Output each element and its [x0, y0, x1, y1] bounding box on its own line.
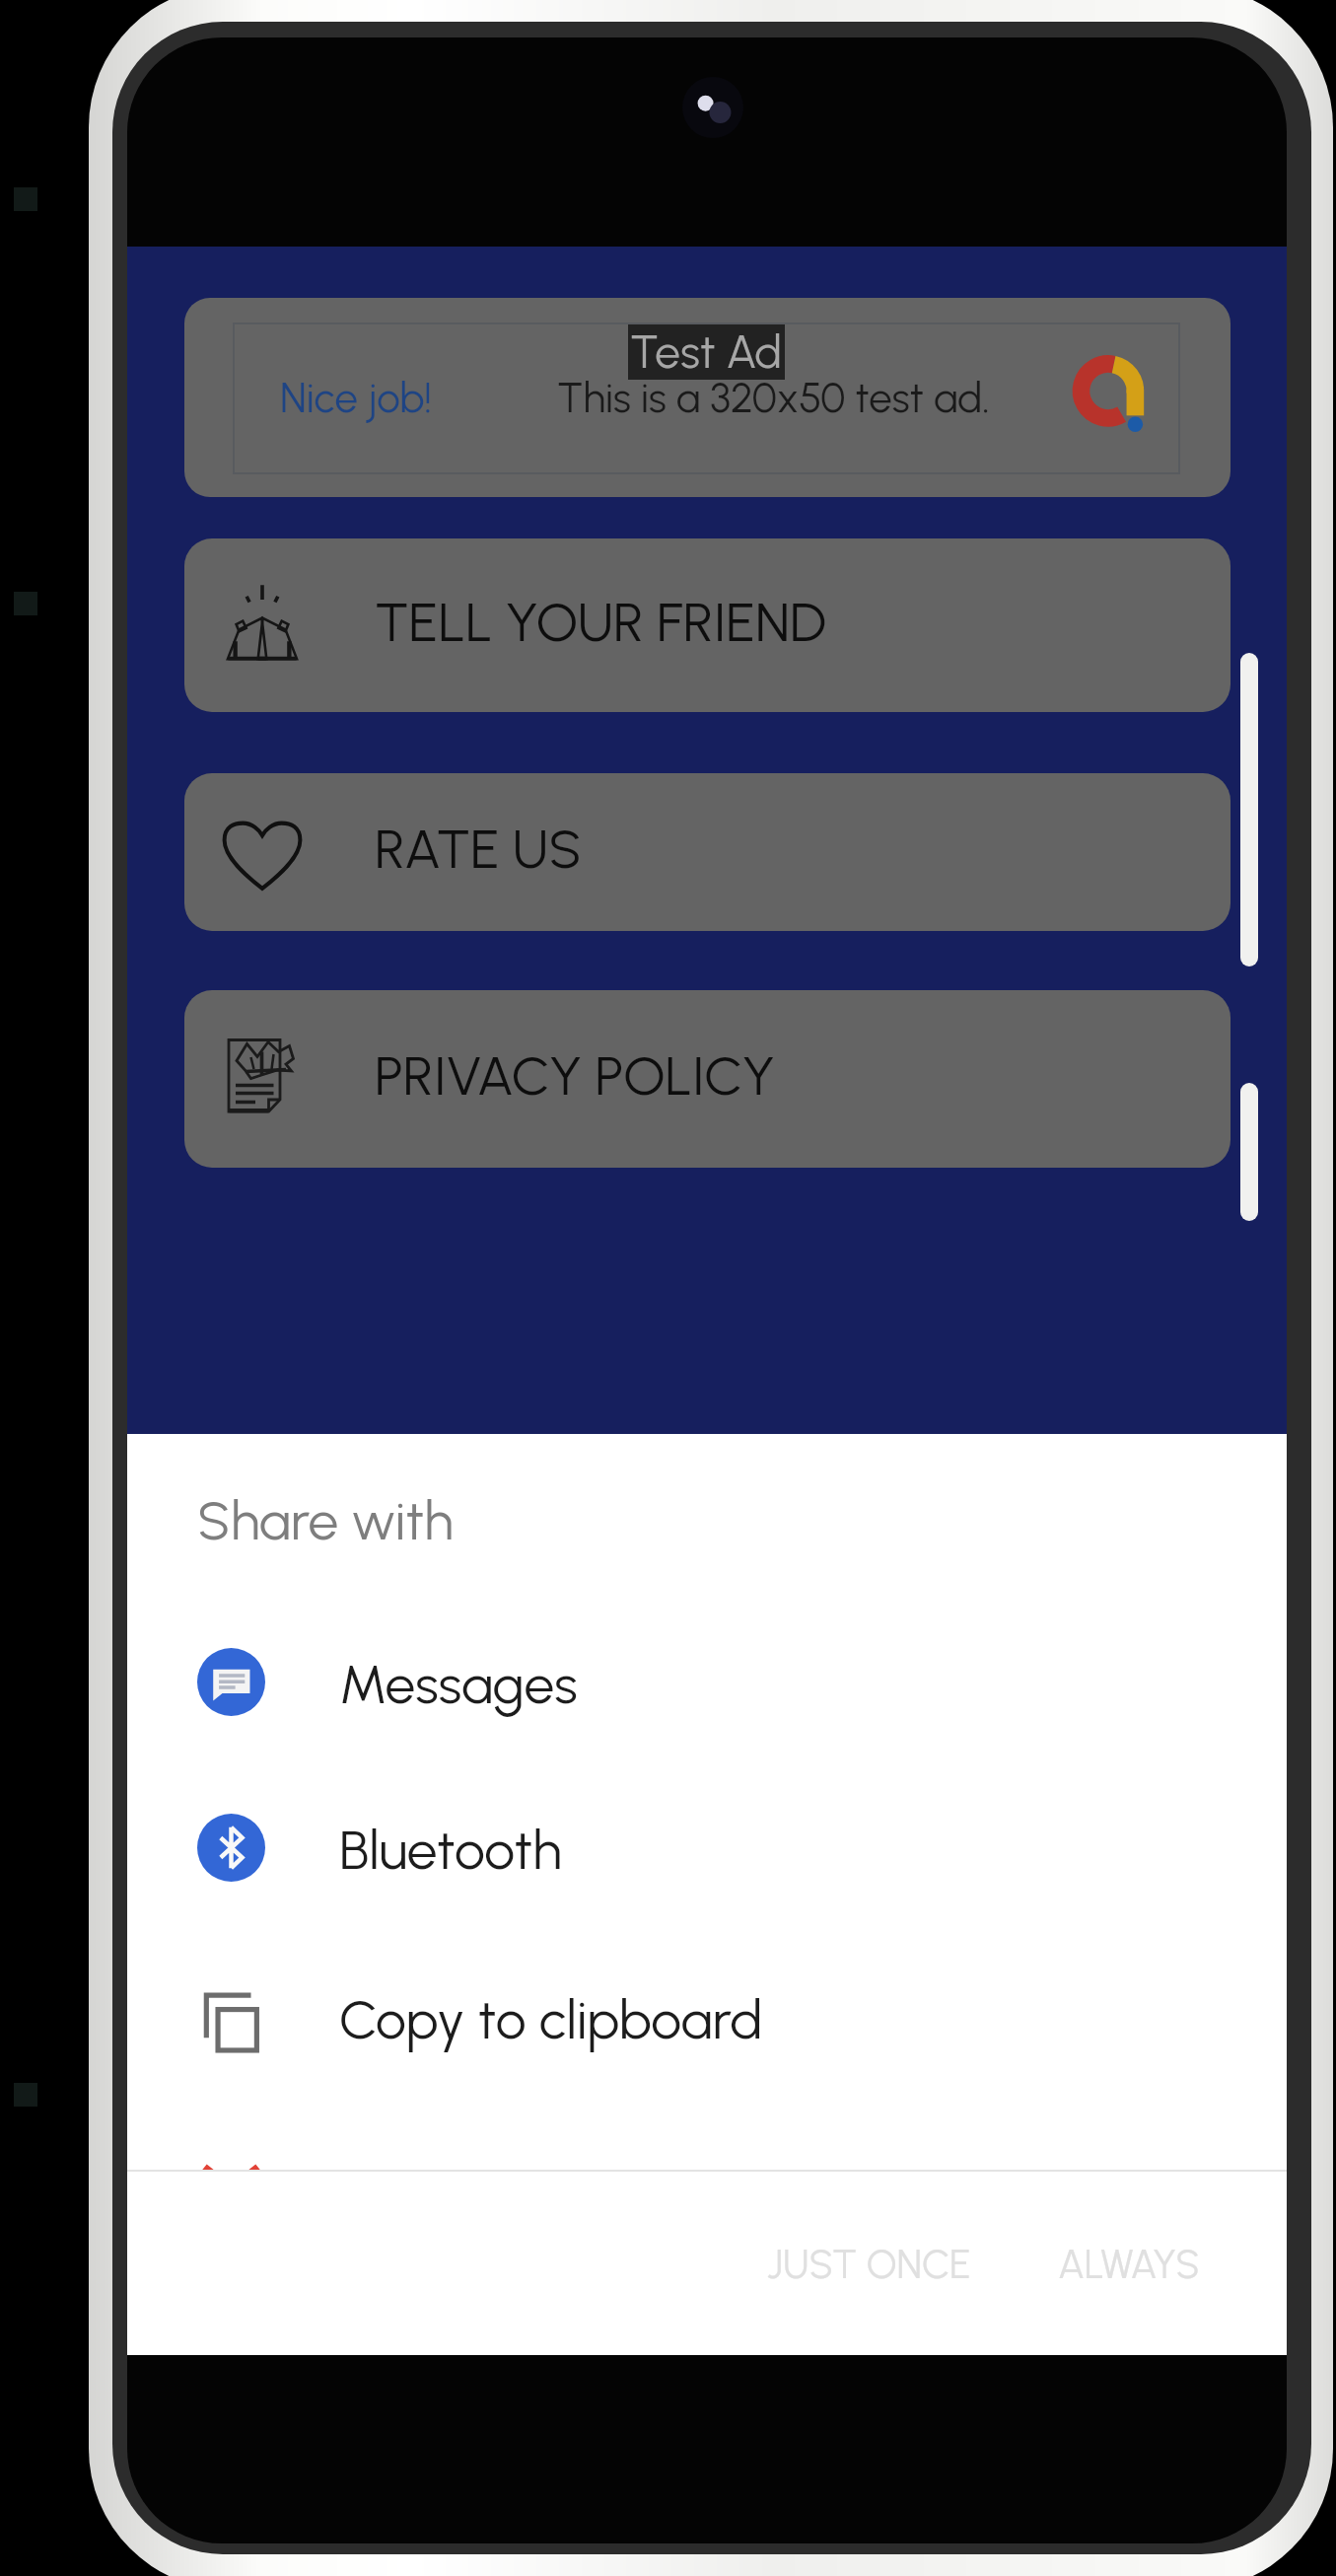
- button[interactable]: Gmail: [127, 2099, 1287, 2170]
- staticText: Bluetooth: [339, 1818, 562, 1883]
- button[interactable]: PRIVACY POLICY: [184, 990, 1231, 1168]
- staticText: RATE US: [375, 817, 582, 882]
- staticText: TELL YOUR FRIEND: [375, 590, 826, 655]
- button[interactable]: RATE US: [184, 773, 1231, 931]
- button[interactable]: TELL YOUR FRIEND: [184, 538, 1231, 712]
- button[interactable]: ALWAYS: [1029, 2221, 1246, 2312]
- staticText: This is a 320x50 test ad.: [557, 373, 990, 422]
- staticText: ALWAYS: [1058, 2241, 1200, 2288]
- button[interactable]: Messages: [127, 1599, 1287, 1764]
- staticText: Messages: [339, 1652, 578, 1717]
- staticText: Share with: [197, 1488, 454, 1553]
- staticText: Copy to clipboard: [339, 1987, 763, 2052]
- button[interactable]: Copy to clipboard: [127, 1934, 1287, 2100]
- staticText: Nice job!: [280, 373, 433, 422]
- staticText: PRIVACY POLICY: [375, 1043, 775, 1109]
- button[interactable]: JUST ONCE: [738, 2221, 995, 2312]
- staticText: Test Ad: [630, 324, 783, 379]
- button[interactable]: Bluetooth: [127, 1764, 1287, 1930]
- button[interactable]: Nice job!: [184, 298, 1231, 497]
- button[interactable]: [127, 2170, 1287, 2308]
- staticText: JUST ONCE: [767, 2241, 971, 2288]
